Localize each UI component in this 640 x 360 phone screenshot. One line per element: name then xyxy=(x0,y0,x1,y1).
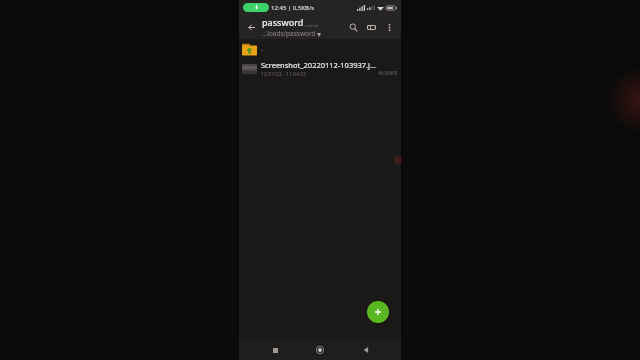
staticText: 12/01/22 - 11:04:53 xyxy=(261,71,306,78)
staticText: ...loads/password xyxy=(262,29,316,38)
staticText: 12:45 | 0,5KB/s xyxy=(271,4,315,12)
button[interactable]: Recents xyxy=(265,340,285,360)
button[interactable]: Home xyxy=(310,340,330,360)
button[interactable]: Screenshot_20220112-103937.jpg xyxy=(239,59,401,79)
staticText: 46.89KB xyxy=(378,70,398,77)
staticText: .. xyxy=(261,44,265,54)
button[interactable]: Search xyxy=(344,18,362,36)
staticText: ▪▪▪▪▪ xyxy=(305,23,319,28)
button[interactable]: Add xyxy=(367,301,389,323)
button[interactable]: password xyxy=(262,16,342,38)
button[interactable]: More options xyxy=(380,18,398,36)
staticText: Screenshot_20220112-103937.jpg xyxy=(261,60,378,70)
staticText: password xyxy=(262,16,304,28)
button[interactable]: Back xyxy=(356,340,376,360)
button[interactable]: Navigate up xyxy=(242,18,260,36)
button[interactable]: .. xyxy=(239,39,401,59)
button[interactable]: Change view xyxy=(362,18,380,36)
